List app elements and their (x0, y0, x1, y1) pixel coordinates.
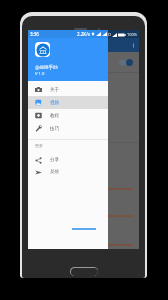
button[interactable]: 反馈 (28, 166, 108, 178)
button[interactable]: Toggle (119, 59, 133, 66)
button[interactable]: 分享 (28, 154, 108, 166)
staticText: 技巧 (50, 126, 60, 132)
staticText: 关于 (50, 87, 60, 93)
staticText: V 1.0 (35, 71, 45, 77)
button[interactable]: 技巧 (28, 122, 108, 135)
staticText: 全能牌手助 (35, 65, 58, 71)
staticText: 分享 (50, 157, 60, 163)
staticText: 2.2K/s (77, 31, 90, 37)
button[interactable]: 视频 (28, 96, 108, 109)
button[interactable]: 教程 (28, 109, 108, 122)
staticText: HD (105, 32, 111, 37)
staticText: 反馈 (50, 169, 60, 175)
staticText: 视频 (50, 100, 60, 106)
staticText: 3:36 (30, 31, 39, 37)
button[interactable]: More options (129, 41, 137, 49)
staticText: 教程 (50, 113, 60, 119)
staticText: 更多 (35, 143, 43, 148)
staticText: 4G (98, 32, 104, 37)
button[interactable]: 关于 (28, 83, 108, 96)
staticText: 100% (127, 32, 138, 37)
